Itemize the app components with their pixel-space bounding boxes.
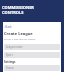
button[interactable]: ‹ Back [4, 25, 12, 29]
staticText: COMMISSIONER [2, 5, 34, 10]
staticText: Settings [4, 60, 16, 64]
button[interactable]: Sport [4, 52, 60, 58]
staticText: ‹ Back [4, 25, 12, 29]
staticText: Sport [6, 53, 13, 57]
button[interactable]: Teams [4, 65, 60, 71]
staticText: League name [6, 45, 23, 49]
staticText: Teams [6, 66, 14, 70]
staticText: Create League [4, 31, 33, 36]
staticText: CONTROLS [2, 10, 24, 15]
button[interactable]: League name [4, 44, 60, 50]
staticText: Set up a new fantasy league [4, 37, 36, 40]
